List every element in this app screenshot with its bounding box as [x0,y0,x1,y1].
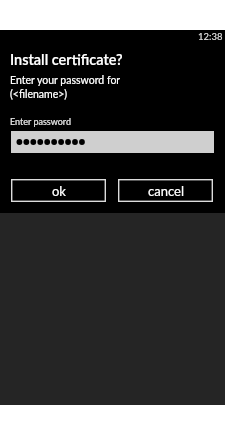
button[interactable]: cancel [118,179,213,202]
staticText: Install certificate? [10,51,123,68]
staticText: Enter your password for (<filename>) [10,74,121,100]
staticText: ok [52,183,66,199]
staticText: 12:38 [198,31,223,42]
button[interactable]: Password field [11,131,214,153]
button[interactable]: ok [11,179,106,202]
staticText: cancel [148,183,184,199]
staticText: Enter password [10,116,71,127]
